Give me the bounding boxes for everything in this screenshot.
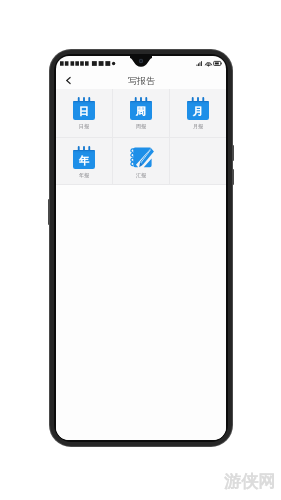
staticText: 年 bbox=[79, 154, 89, 167]
staticText: 汇报 bbox=[136, 172, 146, 178]
staticText: 年报 bbox=[79, 172, 89, 178]
staticText: 游侠网 bbox=[224, 471, 275, 492]
staticText: 日报 bbox=[79, 123, 89, 129]
button[interactable]: 月 bbox=[170, 89, 226, 137]
staticText: 周报 bbox=[136, 123, 146, 129]
staticText: 周 bbox=[136, 105, 146, 118]
button[interactable]: Back bbox=[60, 72, 76, 88]
button[interactable]: 汇报 bbox=[113, 138, 169, 185]
staticText: 月 bbox=[193, 105, 203, 118]
button[interactable]: 日 bbox=[56, 89, 112, 137]
staticText: 日 bbox=[79, 105, 89, 118]
staticText: 写报告 bbox=[128, 75, 155, 86]
button[interactable]: 周 bbox=[113, 89, 169, 137]
button[interactable]: 年 bbox=[56, 138, 112, 185]
staticText: 月报 bbox=[193, 123, 203, 129]
